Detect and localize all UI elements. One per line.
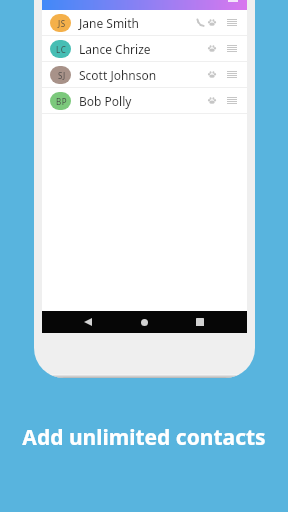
staticText: Bob Polly [79, 93, 132, 109]
staticText: Scott Johnson [79, 67, 157, 83]
button[interactable]: Call [194, 17, 205, 28]
button[interactable]: BP [42, 88, 247, 113]
staticText: Lance Chrize [79, 41, 151, 57]
staticText: JS [58, 18, 66, 29]
staticText: BP [56, 96, 68, 107]
button[interactable]: Home [134, 311, 154, 333]
button[interactable]: More options [225, 88, 239, 113]
button[interactable]: More options [225, 10, 239, 35]
staticText: SJ [58, 70, 66, 81]
staticText: Add unlimited contacts [0, 423, 288, 452]
button[interactable]: SJ [42, 62, 247, 87]
button[interactable]: Pets [206, 36, 217, 61]
button[interactable]: Pets [206, 10, 217, 35]
staticText: LC [56, 44, 67, 55]
button[interactable]: Pets [206, 88, 217, 113]
button[interactable]: Pets [206, 62, 217, 87]
button[interactable]: Back [78, 311, 98, 333]
button[interactable]: Recent apps [190, 311, 210, 333]
button[interactable]: More options [225, 36, 239, 61]
button[interactable]: JS [42, 10, 247, 35]
button[interactable]: More options [225, 62, 239, 87]
button[interactable]: LC [42, 36, 247, 61]
staticText: Jane Smith [79, 15, 139, 31]
